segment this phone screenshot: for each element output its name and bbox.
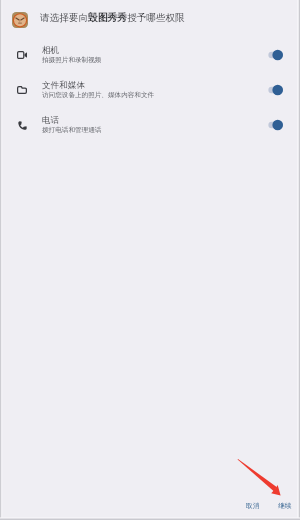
staticText: 相机 [42,45,60,56]
button[interactable]: Toggle 相机 [258,47,283,63]
staticText: 拍摄照片和录制视频 [42,56,102,64]
staticText: 访问您设备上的照片、媒体内容和文件 [42,91,155,99]
button[interactable]: 取消 [243,500,263,512]
staticText: 继续 [278,502,292,510]
staticText: 文件和媒体 [42,80,85,91]
button[interactable]: Toggle 电话 [258,117,283,133]
staticText: 取消 [246,502,260,510]
staticText: 拨打电话和管理通话 [42,126,102,134]
button[interactable]: 文件和媒体 [0,72,300,107]
button[interactable]: 相机 [0,37,300,72]
button[interactable]: Toggle 文件和媒体 [258,82,283,98]
button[interactable]: 继续 [275,500,295,512]
button[interactable]: 电话 [0,107,300,142]
staticText: 电话 [42,115,60,126]
staticText: 请选择要向毁图秀秀授予哪些权限 [40,12,185,24]
